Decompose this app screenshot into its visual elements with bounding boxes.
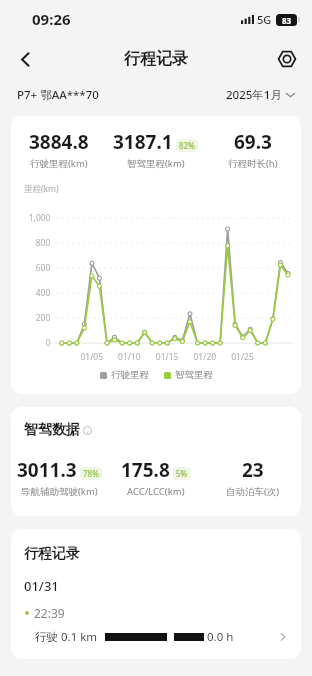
- button[interactable]: 2025年1月: [226, 87, 295, 103]
- staticText: 5%: [176, 468, 188, 479]
- staticText: 3884.8: [29, 129, 89, 155]
- button[interactable]: 智驾里程: [164, 369, 213, 381]
- staticText: 09:26: [32, 9, 71, 29]
- staticText: P7+ 鄂AA***70: [17, 87, 99, 103]
- staticText: 78%: [83, 468, 99, 479]
- staticText: 3011.3: [17, 457, 77, 483]
- button[interactable]: Back: [8, 42, 42, 76]
- staticText: 82%: [179, 140, 195, 151]
- staticText: 23: [242, 457, 264, 483]
- staticText: 智驾里程: [175, 369, 213, 381]
- staticText: 2025年1月: [226, 87, 282, 103]
- button[interactable]: 智驾数据: [24, 421, 92, 439]
- staticText: 导航辅助驾驶(km): [21, 485, 98, 498]
- staticText: 行程记录: [124, 49, 188, 69]
- staticText: 3187.1: [113, 129, 173, 155]
- button[interactable]: 行驶 0.1 km: [11, 629, 301, 645]
- staticText: 175.8: [121, 457, 170, 483]
- staticText: 22:39: [34, 605, 65, 621]
- button[interactable]: 行驶里程: [100, 369, 149, 381]
- button[interactable]: Settings: [270, 42, 304, 76]
- staticText: 智驾数据: [24, 421, 80, 439]
- staticText: 0.0 h: [207, 629, 234, 645]
- staticText: 01/31: [24, 577, 59, 595]
- staticText: 行驶里程(km): [30, 157, 88, 170]
- staticText: 83: [282, 15, 292, 26]
- staticText: 里程(km): [24, 183, 59, 195]
- staticText: 69.3: [234, 129, 272, 155]
- staticText: 智驾里程(km): [127, 157, 185, 170]
- staticText: ACC/LCC(km): [127, 485, 185, 498]
- staticText: 自动泊车(次): [226, 485, 280, 498]
- staticText: 行程记录: [24, 545, 80, 563]
- staticText: 行程时长(h): [228, 157, 278, 170]
- staticText: 5G: [257, 12, 272, 27]
- staticText: 行驶里程: [111, 369, 149, 381]
- staticText: 行驶 0.1 km: [35, 629, 98, 645]
